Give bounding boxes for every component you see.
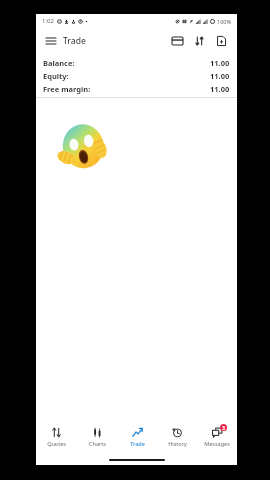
staticText: Charts (89, 440, 106, 447)
staticText: Balance: (43, 58, 75, 68)
button[interactable]: New order (213, 32, 230, 49)
button[interactable]: 3 (197, 420, 237, 454)
button[interactable]: Menu (43, 33, 59, 49)
staticText: 1:02 (42, 17, 54, 25)
button[interactable]: Deposit (169, 32, 186, 49)
staticText: 11.00 (210, 58, 230, 68)
staticText: Equity: (43, 71, 69, 81)
staticText: 3 (222, 425, 225, 431)
staticText: 100% (217, 18, 232, 25)
staticText: 11.00 (210, 84, 230, 94)
staticText: Trade (63, 35, 86, 47)
button[interactable]: Trade (117, 420, 157, 454)
button[interactable]: Charts (77, 420, 117, 454)
button[interactable]: History (157, 420, 197, 454)
staticText: Messages (204, 440, 230, 447)
button[interactable]: Sort (191, 32, 208, 49)
staticText: Free margin: (43, 84, 91, 94)
button[interactable]: Quotes (36, 420, 77, 454)
staticText: Trade (130, 440, 145, 447)
staticText: 11.00 (210, 71, 230, 81)
staticText: History (168, 440, 187, 447)
staticText: Quotes (47, 440, 66, 447)
